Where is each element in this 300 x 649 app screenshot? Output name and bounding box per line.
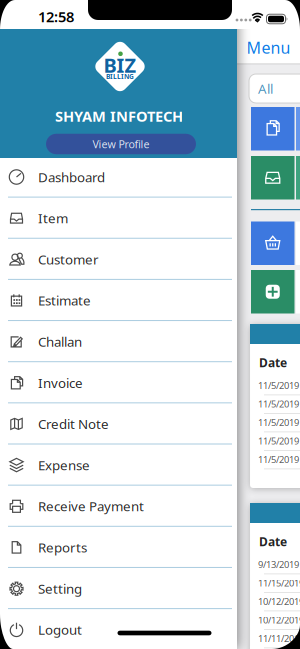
button[interactable]: Menu [246, 37, 290, 58]
staticText: Date [259, 354, 287, 370]
staticText: Challan [38, 333, 82, 350]
staticText: Reports [38, 538, 87, 556]
button[interactable]: Expense [0, 445, 237, 486]
button[interactable]: Receive Payment [0, 486, 237, 527]
staticText: 11/5/2019 [258, 435, 299, 447]
staticText: Credit Note [38, 415, 109, 433]
staticText: Item [38, 209, 68, 227]
button[interactable]: Items [251, 156, 294, 199]
staticText: 11/15/2019 [258, 577, 300, 589]
staticText: Date [259, 533, 287, 549]
staticText: Customer [38, 250, 99, 268]
staticText: Expense [38, 456, 90, 474]
staticText: BILLING [106, 72, 134, 81]
button[interactable]: Purchase [251, 221, 294, 265]
button[interactable]: Credit Note [0, 403, 237, 444]
button[interactable]: Invoices [251, 107, 294, 150]
staticText: BIZ [103, 52, 136, 78]
button[interactable]: All [249, 74, 300, 103]
staticText: Logout [38, 621, 82, 638]
staticText: 12:58 [38, 7, 74, 26]
staticText: 10/12/2019 [258, 614, 300, 626]
staticText: Setting [38, 580, 82, 597]
staticText: SHYAM INFOTECH [55, 106, 183, 126]
staticText: Menu [246, 37, 290, 58]
staticText: 9/13/2019 [258, 558, 299, 571]
staticText: Dashboard [38, 168, 105, 186]
staticText: 11/5/2019 [258, 453, 299, 466]
button[interactable]: Item [0, 198, 237, 239]
staticText: 11/5/2019 [258, 379, 299, 392]
staticText: Estimate [38, 292, 91, 309]
button[interactable]: Setting [0, 568, 237, 609]
staticText: Invoice [38, 374, 83, 392]
button[interactable]: Customer [0, 239, 237, 280]
staticText: All [258, 80, 273, 97]
staticText: 11/5/2019 [258, 398, 299, 410]
staticText: Receive Payment [38, 497, 144, 515]
button[interactable]: Estimate [0, 280, 237, 321]
button[interactable]: View Profile [46, 134, 196, 154]
button[interactable]: Logout [0, 609, 237, 649]
staticText: 11/5/2019 [258, 416, 299, 429]
button[interactable]: Reports [0, 527, 237, 568]
staticText: View Profile [92, 137, 149, 151]
staticText: 10/12/2019 [258, 595, 300, 608]
button[interactable]: Add New [251, 270, 294, 313]
staticText: 11/11/2019 [258, 632, 300, 645]
button[interactable]: Dashboard [0, 156, 237, 197]
button[interactable]: Invoice [0, 362, 237, 403]
button[interactable]: Challan [0, 321, 237, 362]
